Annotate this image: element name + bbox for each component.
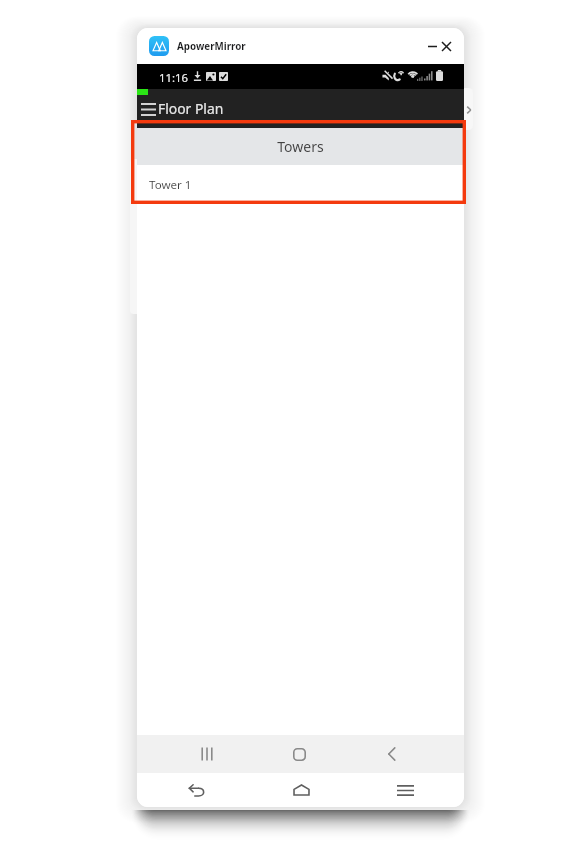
button[interactable]: Close bbox=[439, 36, 453, 56]
button[interactable]: Minimize bbox=[425, 36, 439, 56]
button[interactable]: Tower 1 bbox=[137, 165, 464, 201]
button[interactable]: Back bbox=[362, 735, 422, 773]
button[interactable]: Collapse panel bbox=[130, 159, 137, 314]
staticText: Tower 1 bbox=[149, 177, 192, 193]
button[interactable]: Home bbox=[271, 773, 331, 807]
button[interactable]: Towers bbox=[137, 128, 464, 165]
button[interactable]: Recent apps bbox=[177, 735, 237, 773]
button[interactable]: Home bbox=[269, 735, 329, 773]
button[interactable]: Expand panel bbox=[464, 88, 473, 130]
button[interactable]: Back bbox=[166, 773, 226, 807]
staticText: Towers bbox=[277, 137, 324, 156]
staticText: ApowerMirror bbox=[177, 40, 246, 53]
button[interactable]: Open navigation menu bbox=[138, 94, 158, 124]
staticText: 11:16 bbox=[159, 70, 188, 85]
staticText: Floor Plan bbox=[158, 99, 224, 118]
button[interactable]: Menu bbox=[375, 773, 435, 807]
